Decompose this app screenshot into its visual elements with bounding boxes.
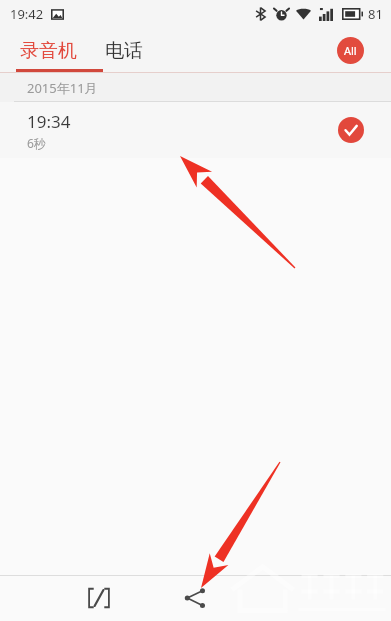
staticText: 19:42 (10, 5, 44, 23)
button[interactable]: 电话 (91, 33, 157, 69)
button[interactable]: Share (174, 577, 216, 619)
staticText: 2015年11月 (27, 79, 98, 97)
button[interactable]: 19:34 (0, 102, 391, 158)
staticText: 录音机 (20, 39, 77, 63)
button[interactable]: All (337, 37, 364, 64)
staticText: All (344, 43, 357, 58)
staticText: 19:34 (27, 110, 71, 133)
button[interactable]: Select all (78, 577, 120, 619)
staticText: 电话 (105, 39, 143, 63)
other: Selected (338, 117, 364, 143)
staticText: 81 (368, 5, 383, 23)
staticText: 6秒 (27, 135, 46, 151)
button[interactable]: 录音机 (0, 33, 91, 69)
